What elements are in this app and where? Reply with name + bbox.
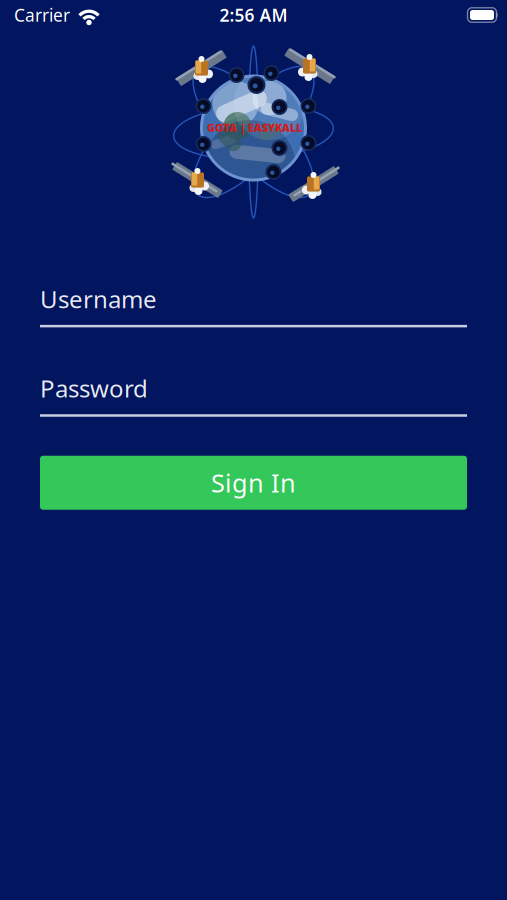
button[interactable]: Sign In [40, 456, 467, 510]
staticText: Username [40, 283, 157, 315]
button[interactable]: Username [40, 283, 467, 327]
staticText: GOTA | EASYKALL [207, 120, 302, 135]
button[interactable]: Password [40, 372, 467, 417]
staticText: Password [40, 372, 148, 404]
staticText: Carrier [14, 3, 70, 26]
staticText: Sign In [211, 466, 296, 499]
staticText: 2:56 AM [219, 3, 287, 26]
